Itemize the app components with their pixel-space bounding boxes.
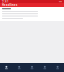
button[interactable]: Tab: [13, 63, 26, 72]
staticText: 9:41: [2, 0, 9, 3]
button[interactable]: Tab: [51, 63, 64, 72]
button[interactable]: Headlines: [2, 3, 17, 7]
staticText: Headlines: [2, 3, 17, 7]
button[interactable]: Tab: [0, 63, 13, 72]
staticText: ▮▮▮: [59, 1, 62, 2]
button[interactable]: Tab: [26, 63, 38, 72]
button[interactable]: Tab: [38, 63, 51, 72]
